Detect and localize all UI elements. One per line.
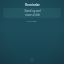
staticText: in 5 min — [27, 19, 37, 22]
staticText: Reminder — [25, 3, 40, 7]
button[interactable]: in 5 min — [1, 19, 63, 22]
button[interactable]: Dismiss — [30, 58, 34, 62]
button[interactable]: Stand up and — [3, 8, 61, 18]
staticText: Stand up and — [24, 9, 41, 13]
button[interactable]: Reminder — [1, 3, 63, 7]
staticText: move a little — [25, 13, 40, 17]
